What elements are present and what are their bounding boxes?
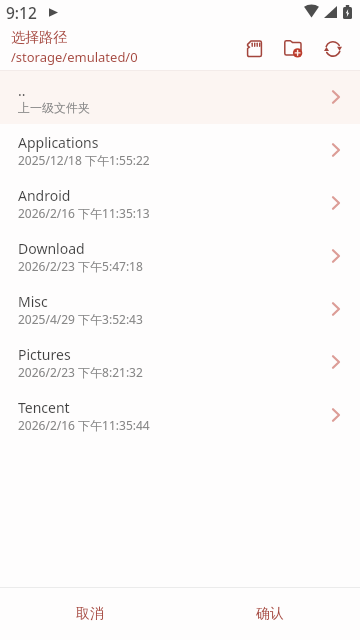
staticText: .. bbox=[18, 81, 26, 100]
staticText: Tencent bbox=[18, 398, 70, 417]
staticText: 选择路径 bbox=[11, 29, 67, 47]
button[interactable]: 取消 bbox=[0, 588, 180, 640]
button[interactable]: Misc bbox=[0, 283, 360, 336]
staticText: 2025/12/18 下午1:55:22 bbox=[18, 152, 150, 168]
button[interactable]: Tencent bbox=[0, 389, 360, 442]
button[interactable] bbox=[320, 36, 344, 60]
button[interactable]: Applications bbox=[0, 124, 360, 177]
staticText: 2026/2/23 下午5:47:18 bbox=[18, 258, 143, 274]
button[interactable]: .. bbox=[0, 71, 360, 124]
staticText: 2026/2/23 下午8:21:32 bbox=[18, 364, 143, 380]
staticText: 取消 bbox=[76, 605, 104, 623]
staticText: Pictures bbox=[18, 345, 71, 364]
staticText: Download bbox=[18, 239, 85, 258]
button[interactable]: 确认 bbox=[180, 588, 360, 640]
button[interactable]: Android bbox=[0, 177, 360, 230]
staticText: 9:12 bbox=[6, 2, 37, 23]
staticText: 上一级文件夹 bbox=[18, 100, 90, 115]
staticText: 2026/2/16 下午11:35:13 bbox=[18, 205, 150, 221]
staticText: 2026/2/16 下午11:35:44 bbox=[18, 417, 150, 433]
staticText: 确认 bbox=[256, 605, 284, 623]
staticText: Applications bbox=[18, 133, 99, 152]
button[interactable]: Download bbox=[0, 230, 360, 283]
staticText: /storage/emulated/0 bbox=[11, 48, 138, 66]
staticText: 2025/4/29 下午3:52:43 bbox=[18, 311, 143, 327]
button[interactable] bbox=[242, 36, 266, 60]
button[interactable] bbox=[280, 35, 306, 61]
button[interactable]: Pictures bbox=[0, 336, 360, 389]
staticText: Misc bbox=[18, 292, 48, 311]
staticText: Android bbox=[18, 186, 71, 205]
